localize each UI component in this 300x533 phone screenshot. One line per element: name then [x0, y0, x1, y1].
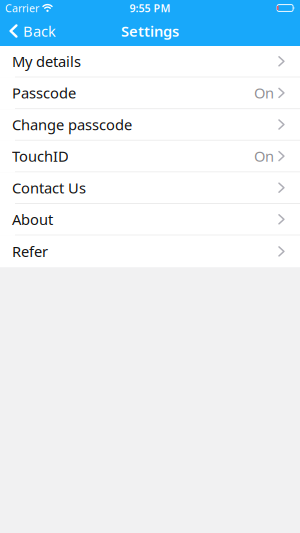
staticText: Settings	[121, 21, 179, 41]
staticText: My details	[12, 52, 81, 71]
staticText: TouchID	[12, 146, 69, 166]
staticText: 9:55 PM	[129, 1, 170, 15]
staticText: On	[254, 83, 274, 103]
staticText: Carrier	[5, 1, 39, 15]
button[interactable]: Passcode	[0, 78, 300, 109]
staticText: About	[12, 210, 53, 229]
staticText: On	[254, 146, 274, 166]
button[interactable]: TouchID	[0, 141, 300, 172]
button[interactable]: About	[0, 204, 300, 236]
button[interactable]: Refer	[0, 236, 300, 267]
staticText: Change passcode	[12, 115, 132, 134]
button[interactable]: Back	[9, 21, 56, 41]
staticText: Passcode	[12, 83, 76, 103]
staticText: Refer	[12, 242, 48, 261]
staticText: Back	[23, 21, 56, 41]
staticText: Contact Us	[12, 178, 86, 197]
button[interactable]: Change passcode	[0, 109, 300, 141]
button[interactable]: My details	[0, 46, 300, 78]
button[interactable]: Contact Us	[0, 172, 300, 204]
